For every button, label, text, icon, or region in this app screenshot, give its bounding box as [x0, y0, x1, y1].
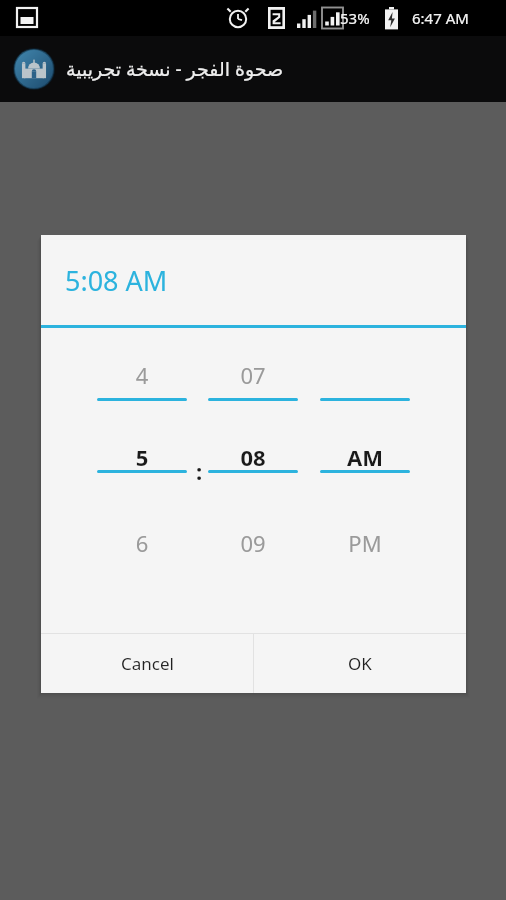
- button[interactable]: Cancel: [41, 634, 253, 693]
- button[interactable]: 09: [208, 528, 298, 558]
- staticText: Cancel: [121, 652, 174, 675]
- staticText: صحوة الفجر - نسخة تجريبية: [66, 56, 284, 82]
- button[interactable]: OK: [254, 634, 466, 693]
- button[interactable]: 6: [97, 528, 187, 558]
- other: App icon: [14, 49, 54, 89]
- staticText: OK: [348, 652, 372, 675]
- button[interactable]: PM: [320, 528, 410, 558]
- button[interactable]: AM: [320, 442, 410, 472]
- staticText: :: [191, 456, 207, 486]
- button[interactable]: 4: [97, 360, 187, 390]
- staticText: 6:47 AM: [412, 8, 469, 28]
- button[interactable]: 5: [97, 442, 187, 472]
- staticText: 53%: [340, 8, 370, 28]
- button[interactable]: 07: [208, 360, 298, 390]
- staticText: 5:08 AM: [65, 262, 168, 299]
- button[interactable]: 08: [208, 442, 298, 472]
